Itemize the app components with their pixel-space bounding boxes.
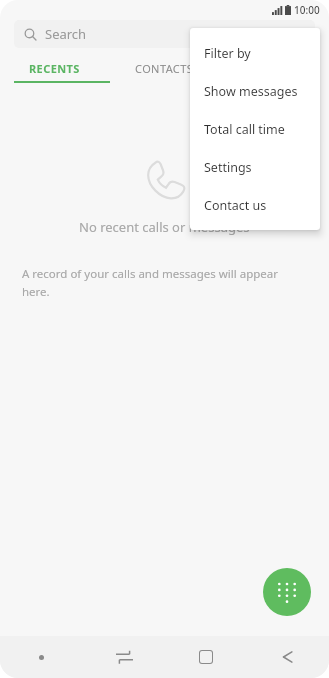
button[interactable]: Filter by	[190, 34, 320, 72]
button[interactable]: Back	[247, 636, 329, 678]
staticText: Settings	[204, 159, 252, 176]
button[interactable]: RECENTS	[0, 55, 109, 81]
button[interactable]: Show messages	[190, 72, 320, 110]
button[interactable]: Total call time	[190, 110, 320, 148]
staticText: A record of your calls and messages will…	[22, 266, 307, 299]
staticText: RECENTS	[29, 61, 80, 76]
staticText: Contact us	[204, 197, 267, 214]
staticText: 10:00	[294, 3, 320, 17]
staticText: No recent calls or messages	[79, 218, 250, 236]
button[interactable]: Recent apps	[83, 636, 165, 678]
button[interactable]: Open dialpad	[263, 568, 311, 616]
button[interactable]: Assistant	[0, 636, 83, 678]
button[interactable]: Settings	[190, 148, 320, 186]
button[interactable]: Home	[165, 636, 247, 678]
staticText: Search	[45, 25, 87, 43]
staticText: Total call time	[204, 121, 285, 138]
staticText: Show messages	[204, 83, 298, 100]
button[interactable]: CONTACTS	[109, 55, 219, 81]
button[interactable]: Search	[14, 20, 315, 48]
staticText: CONTACTS	[135, 61, 194, 76]
staticText: Filter by	[204, 45, 251, 62]
button[interactable]: Contact us	[190, 186, 320, 224]
